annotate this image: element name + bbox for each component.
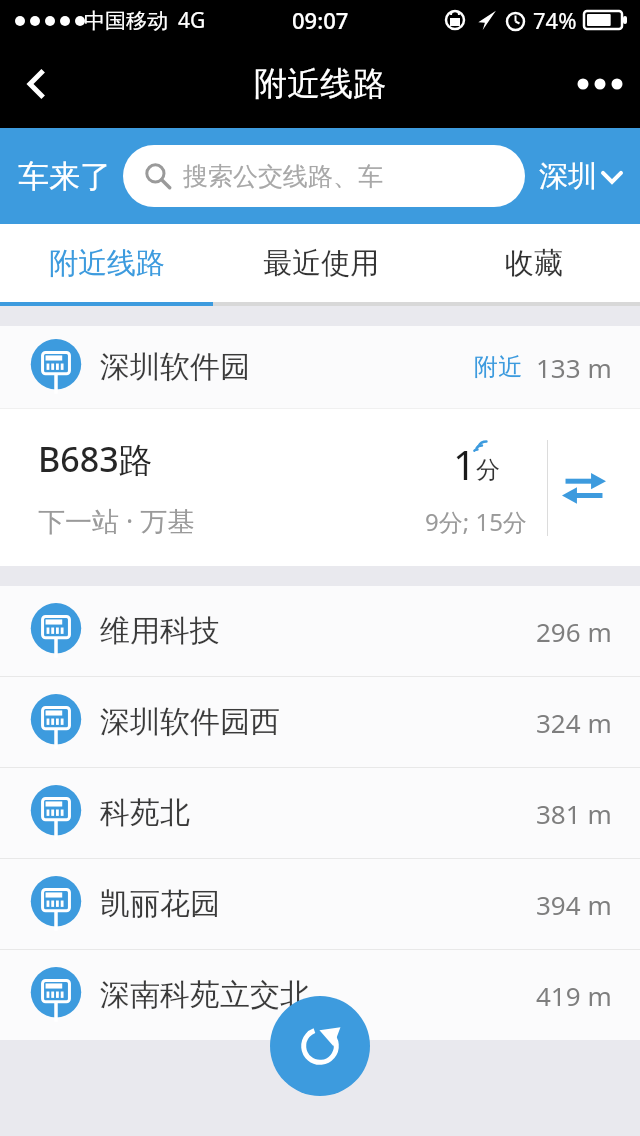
staticText: 附近线路 [49, 245, 165, 282]
button[interactable]: 深圳软件园 [0, 326, 640, 408]
staticText: 科苑北 [100, 794, 536, 832]
staticText: 车来了 [18, 157, 111, 196]
button[interactable]: B683路 [0, 409, 640, 566]
staticText: 最近使用 [263, 245, 379, 282]
button[interactable]: 收藏 [427, 224, 640, 302]
button[interactable]: 深南科苑立交北 [0, 950, 640, 1040]
staticText: 深圳软件园 [100, 348, 474, 386]
button[interactable]: 维用科技 [0, 586, 640, 676]
button[interactable]: Refresh [270, 996, 370, 1096]
button[interactable]: 搜索公交线路、车 [123, 145, 525, 207]
button[interactable]: More options [560, 48, 640, 120]
staticText: 附近 [474, 352, 522, 382]
staticText: 维用科技 [100, 612, 536, 650]
staticText: 凯丽花园 [100, 885, 536, 923]
staticText: 296 m [536, 614, 612, 649]
button[interactable]: Back [0, 48, 72, 120]
staticText: 下一站 · 万基 [38, 502, 195, 539]
staticText: 09:07 [292, 5, 349, 35]
button[interactable]: 凯丽花园 [0, 859, 640, 949]
staticText: 1 [453, 437, 476, 491]
staticText: 381 m [536, 796, 612, 831]
button[interactable]: 深圳 [539, 150, 622, 203]
staticText: 133 m [536, 350, 612, 385]
staticText: 深南科苑立交北 [100, 976, 536, 1014]
staticText: 深圳软件园西 [100, 703, 536, 741]
staticText: 深圳 [539, 158, 597, 195]
staticText: 4G [178, 6, 206, 35]
staticText: 搜索公交线路、车 [183, 161, 383, 192]
staticText: 324 m [536, 705, 612, 740]
staticText: 419 m [536, 978, 612, 1013]
button[interactable]: 最近使用 [214, 224, 427, 302]
staticText: 收藏 [505, 245, 563, 282]
staticText: B683路 [38, 436, 153, 482]
button[interactable]: 深圳软件园西 [0, 677, 640, 767]
staticText: 9分; 15分 [425, 505, 527, 538]
staticText: 附近线路 [254, 63, 386, 105]
staticText: 分 [476, 455, 500, 485]
button[interactable]: 科苑北 [0, 768, 640, 858]
staticText: 74% [533, 5, 577, 35]
button[interactable]: 附近线路 [0, 224, 214, 302]
staticText: 394 m [536, 887, 612, 922]
button[interactable]: Switch direction [548, 452, 620, 524]
staticText: 中国移动 [84, 8, 168, 34]
